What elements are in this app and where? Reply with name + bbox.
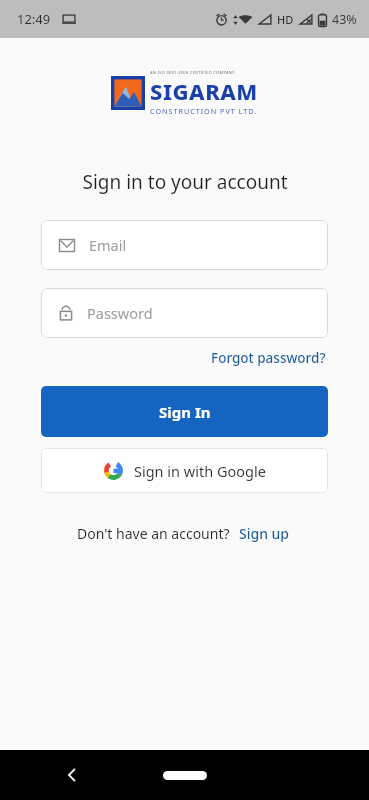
- staticText: CONSTRUCTION PVT LTD.: [150, 106, 258, 116]
- button[interactable]: Password: [41, 288, 328, 338]
- staticText: 43%: [332, 11, 357, 28]
- staticText: HD: [277, 12, 294, 27]
- staticText: Forgot password?: [211, 349, 326, 367]
- button[interactable]: Forgot password?: [209, 346, 328, 370]
- staticText: Sign In: [159, 402, 211, 422]
- staticText: Password: [87, 303, 153, 323]
- button[interactable]: Back: [52, 755, 92, 795]
- staticText: SIGARAM: [150, 76, 258, 106]
- button[interactable]: Email: [41, 220, 328, 270]
- staticText: Sign in to your account: [82, 169, 288, 195]
- staticText: Don't have an account?: [77, 524, 230, 543]
- staticText: 12:49: [17, 10, 51, 28]
- button[interactable]: Sign up: [237, 521, 292, 546]
- staticText: Email: [89, 235, 127, 255]
- staticText: AN ISO 9001:2008 CERTIFIED COMPANY: [150, 70, 235, 75]
- button[interactable]: Sign in with Google: [41, 448, 328, 493]
- staticText: Sign in with Google: [134, 461, 266, 481]
- staticText: Sign up: [239, 524, 290, 543]
- button[interactable]: Home: [159, 765, 211, 785]
- button[interactable]: Sign In: [41, 386, 328, 437]
